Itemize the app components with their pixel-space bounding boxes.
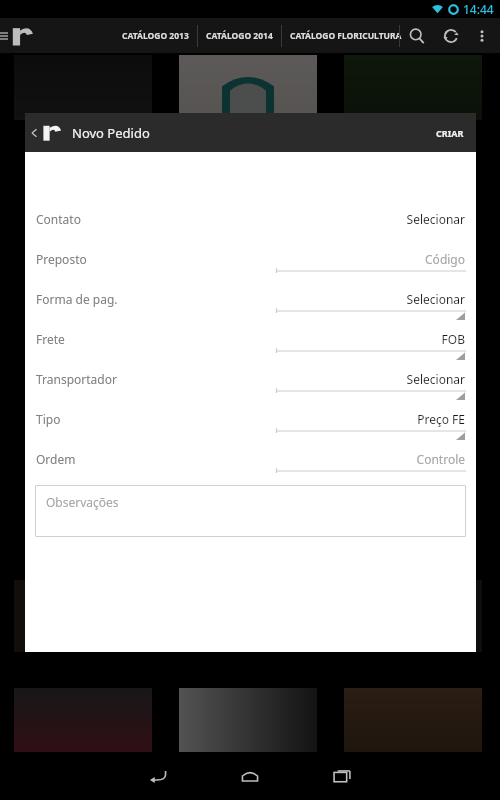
staticText: CRIAR <box>436 127 464 139</box>
staticText: CATÁLOGO FLORICULTURA <box>290 30 402 42</box>
staticText: FOB <box>441 331 465 347</box>
staticText: Preço FE <box>417 411 465 427</box>
button[interactable]: Preposto <box>25 245 476 285</box>
button[interactable]: Menu <box>0 30 8 42</box>
button[interactable]: Forma de pag. <box>25 285 476 325</box>
button[interactable]: CATÁLOGO 2014 <box>198 24 281 48</box>
staticText: Controle <box>416 451 465 467</box>
staticText: CATÁLOGO 2014 <box>206 30 273 42</box>
staticText: Observações <box>46 494 119 510</box>
staticText: Selecionar <box>406 211 465 227</box>
button[interactable]: Refresh <box>434 19 468 53</box>
staticText: Preposto <box>36 251 87 267</box>
button[interactable]: Back <box>130 752 186 800</box>
staticText: Tipo <box>36 411 61 427</box>
staticText: Contato <box>36 211 81 227</box>
staticText: Novo Pedido <box>72 124 150 142</box>
button[interactable]: Frete <box>25 325 476 365</box>
staticText: Forma de pag. <box>36 291 118 307</box>
button[interactable] <box>10 22 38 50</box>
button[interactable]: Recent apps <box>314 752 370 800</box>
button[interactable]: Home <box>222 752 278 800</box>
button[interactable]: Novo Pedido <box>25 121 158 145</box>
button[interactable]: casual <box>14 580 152 652</box>
button[interactable]: Contato <box>25 205 476 245</box>
staticText: Selecionar <box>406 371 465 387</box>
button[interactable]: Transportador <box>25 365 476 405</box>
button[interactable]: More options <box>468 22 496 50</box>
button[interactable]: Observações <box>35 485 466 537</box>
staticText: Ordem <box>36 451 76 467</box>
staticText: Frete <box>36 331 65 347</box>
button[interactable]: CATÁLOGO FLORICULTURA <box>282 24 410 48</box>
button[interactable]: mesas <box>344 580 482 652</box>
staticText: Transportador <box>36 371 117 387</box>
staticText: CATÁLOGO 2013 <box>122 30 189 42</box>
button[interactable]: CATÁLOGO 2013 <box>114 24 197 48</box>
button[interactable]: CRIAR <box>424 117 476 149</box>
staticText: Selecionar <box>406 291 465 307</box>
staticText: Código <box>425 251 465 267</box>
button[interactable]: Tipo <box>25 405 476 445</box>
staticText: 14:44 <box>463 1 494 17</box>
button[interactable]: Ordem <box>25 445 476 485</box>
button[interactable]: Search <box>400 19 434 53</box>
